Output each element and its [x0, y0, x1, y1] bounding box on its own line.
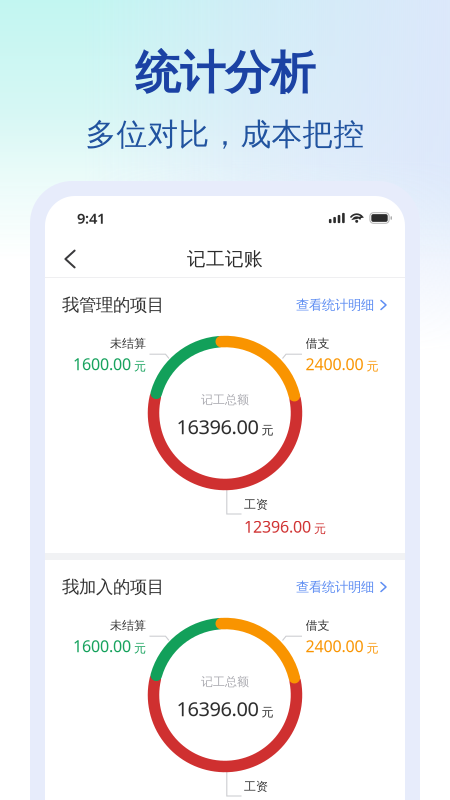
staticText: 记工总额 — [201, 392, 249, 407]
staticText: 元 — [314, 521, 326, 536]
staticText: 1600.00 — [73, 353, 131, 375]
button[interactable]: Back — [54, 240, 86, 278]
staticText: 记工记账 — [187, 247, 263, 270]
staticText: 元 — [261, 705, 273, 719]
staticText: 元 — [366, 641, 378, 655]
staticText: 未结算 — [110, 336, 146, 351]
staticText: 元 — [366, 359, 378, 373]
staticText: 16396.00 — [176, 413, 258, 440]
button[interactable]: 我管理的项目 — [45, 278, 405, 332]
staticText: 16396.00 — [176, 695, 258, 722]
staticText: 工资 — [244, 497, 268, 512]
staticText: 记工总额 — [201, 674, 249, 689]
staticText: 元 — [134, 641, 146, 655]
staticText: 2400.00 — [305, 635, 363, 657]
staticText: 未结算 — [110, 618, 146, 633]
staticText: 我加入的项目 — [62, 576, 164, 598]
staticText: 9:41 — [77, 208, 105, 228]
staticText: 多位对比，成本把控 — [85, 116, 364, 153]
staticText: 我管理的项目 — [62, 294, 164, 316]
staticText: 12396.00 — [244, 516, 311, 537]
staticText: 借支 — [305, 336, 329, 351]
staticText: 统计分析 — [135, 45, 315, 101]
staticText: 元 — [134, 359, 146, 373]
staticText: 查看统计明细 — [296, 579, 374, 595]
staticText: 元 — [261, 423, 273, 437]
staticText: 借支 — [305, 618, 329, 633]
button[interactable]: 我加入的项目 — [45, 560, 405, 614]
staticText: 2400.00 — [305, 353, 363, 375]
staticText: 1600.00 — [73, 635, 131, 657]
staticText: 工资 — [244, 779, 268, 794]
staticText: 查看统计明细 — [296, 297, 374, 313]
